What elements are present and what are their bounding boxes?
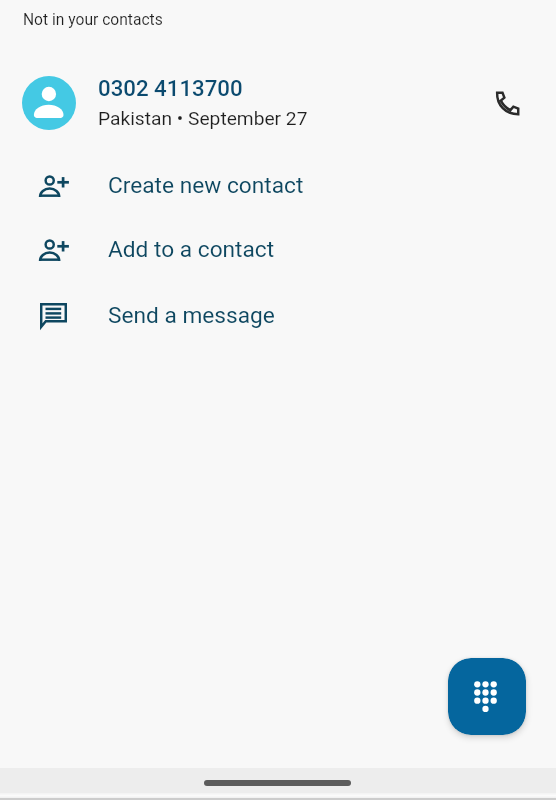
button[interactable]: Send a message [0, 289, 556, 345]
button[interactable]: Add to a contact [0, 223, 556, 279]
button[interactable]: Open dialpad [448, 658, 526, 735]
button[interactable]: Home [204, 780, 351, 786]
staticText: Create new contact [108, 172, 304, 199]
staticText: 0302 4113700 [98, 75, 243, 101]
button[interactable]: Create new contact [0, 159, 556, 215]
staticText: Add to a contact [108, 236, 275, 263]
staticText: Pakistan • September 27 [98, 107, 308, 130]
button[interactable]: Contact photo [22, 76, 76, 130]
staticText: Send a message [108, 302, 275, 329]
staticText: Not in your contacts [23, 11, 163, 29]
button[interactable]: Call [483, 79, 531, 127]
